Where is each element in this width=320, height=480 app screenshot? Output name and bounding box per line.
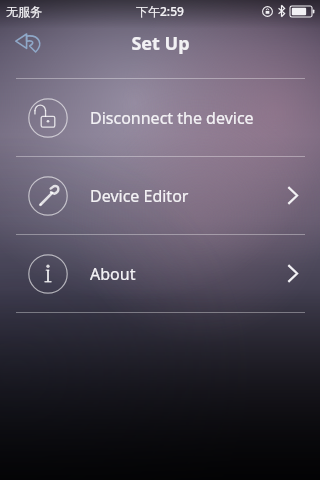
staticText: Disconnect the device — [90, 107, 254, 129]
staticText: 无服务 — [6, 4, 42, 19]
button[interactable]: Back — [8, 22, 50, 64]
staticText: Device Editor — [90, 185, 189, 207]
staticText: Set Up — [131, 31, 190, 56]
button[interactable]: About — [0, 235, 320, 312]
button[interactable]: Disconnect the device — [0, 79, 320, 156]
staticText: 下午2:59 — [136, 3, 184, 19]
staticText: About — [90, 263, 136, 285]
button[interactable]: Device Editor — [0, 157, 320, 234]
